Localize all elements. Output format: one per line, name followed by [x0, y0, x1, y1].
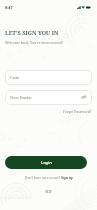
staticText: Phone Number — [10, 96, 32, 100]
staticText: Welcome back, You've been missed! — [5, 40, 63, 45]
staticText: Login — [41, 160, 52, 165]
button[interactable]: SKIP — [45, 190, 52, 194]
staticText: LET'S SIGN YOU IN — [5, 29, 59, 37]
button[interactable]: Phone Number — [5, 90, 92, 105]
other: Status icons — [77, 6, 91, 9]
button[interactable]: Forgot Password? — [63, 109, 92, 114]
staticText: E-mail — [10, 76, 20, 80]
other: Show password — [81, 94, 87, 100]
button[interactable]: E-mail — [5, 70, 92, 85]
staticText: 8:41 — [5, 5, 13, 10]
button[interactable]: Login — [5, 156, 87, 169]
staticText: Don't have an account? — [25, 176, 61, 180]
button[interactable]: Sign up — [61, 176, 73, 180]
